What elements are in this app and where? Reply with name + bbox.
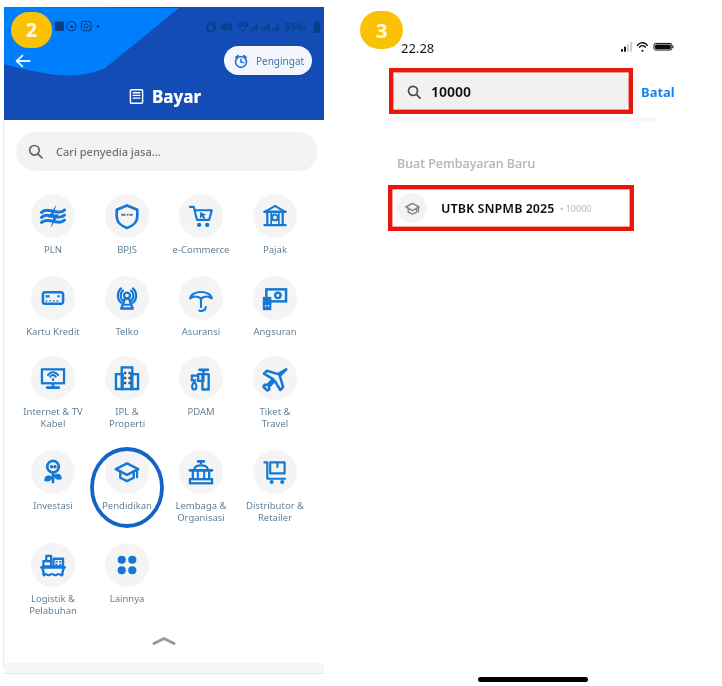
staticText: Pajak xyxy=(238,243,312,256)
staticText: Buat Pembayaran Baru xyxy=(397,155,536,172)
button[interactable]: Pendidikan xyxy=(90,450,164,512)
button[interactable]: Back xyxy=(9,47,37,75)
staticText: Bayar xyxy=(152,85,201,108)
button[interactable]: Pajak xyxy=(238,194,312,256)
staticText: Lainnya xyxy=(90,592,164,605)
button[interactable]: Telko xyxy=(90,276,164,338)
staticText: Lembaga & Organisasi xyxy=(164,499,238,524)
staticText: Distributor & Retailer xyxy=(238,499,312,524)
button[interactable]: Cari penyedia jasa... xyxy=(16,132,318,171)
staticText: Pendidikan xyxy=(90,499,164,512)
button[interactable]: Batal xyxy=(640,71,676,112)
staticText: Pengingat xyxy=(256,54,305,68)
button[interactable]: Distributor & Retailer xyxy=(238,450,312,524)
staticText: Tiket & Travel xyxy=(238,405,312,430)
button[interactable]: PLN xyxy=(16,194,90,256)
staticText: Logistik & Pelabuhan xyxy=(16,592,90,617)
button[interactable]: 10000 xyxy=(393,71,629,112)
staticText: Angsuran xyxy=(238,325,312,338)
button[interactable]: e-Commerce xyxy=(164,194,238,256)
staticText: 35% xyxy=(284,20,306,34)
staticText: Kartu Kredit xyxy=(16,325,90,338)
staticText: Batal xyxy=(641,83,675,101)
button[interactable]: Kartu Kredit xyxy=(16,276,90,338)
button[interactable]: UTBK SNPMB 2025 xyxy=(392,189,630,227)
button[interactable]: Angsuran xyxy=(238,276,312,338)
staticText: e-Commerce xyxy=(164,243,238,256)
staticText: IPL & Properti xyxy=(90,405,164,430)
staticText: Asuransi xyxy=(164,325,238,338)
button[interactable]: Lembaga & Organisasi xyxy=(164,450,238,524)
button[interactable]: Asuransi xyxy=(164,276,238,338)
staticText: UTBK SNPMB 2025 xyxy=(441,200,555,217)
staticText: BPJS xyxy=(90,243,164,256)
button[interactable]: Lainnya xyxy=(90,543,164,605)
button[interactable]: Pengingat xyxy=(224,46,312,75)
staticText: PDAM xyxy=(164,405,238,418)
staticText: 10000 xyxy=(431,82,472,101)
button[interactable]: Logistik & Pelabuhan xyxy=(16,543,90,617)
staticText: Telko xyxy=(90,325,164,338)
button[interactable]: Internet & TV Kabel xyxy=(16,356,90,430)
staticText: Internet & TV Kabel xyxy=(16,405,90,430)
staticText: 22.28 xyxy=(401,39,435,57)
staticText: 3 xyxy=(376,17,388,44)
staticText: PLN xyxy=(16,243,90,256)
button[interactable]: Tiket & Travel xyxy=(238,356,312,430)
staticText: • 10000 xyxy=(560,202,592,214)
staticText: Investasi xyxy=(16,499,90,512)
staticText: 2 xyxy=(26,17,37,43)
staticText: Cari penyedia jasa... xyxy=(56,144,161,159)
button[interactable]: Investasi xyxy=(16,450,90,512)
button[interactable]: BPJS xyxy=(90,194,164,256)
button[interactable]: PDAM xyxy=(164,356,238,418)
button[interactable]: IPL & Properti xyxy=(90,356,164,430)
